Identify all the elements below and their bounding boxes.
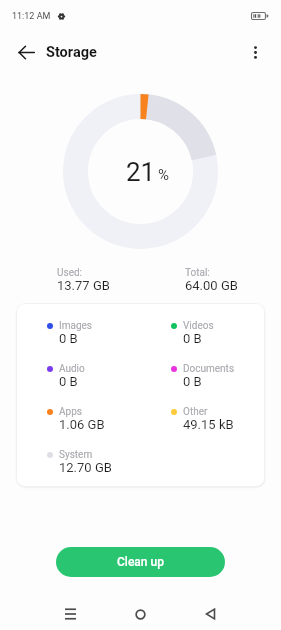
staticText: 11:12 AM [12, 11, 51, 22]
staticText: 13.77 GB [57, 278, 110, 293]
staticText: % [158, 166, 169, 184]
staticText: 0 B [183, 331, 202, 346]
button[interactable]: Recent apps [36, 591, 104, 630]
staticText: 0 B [59, 331, 78, 346]
staticText: Videos [183, 320, 214, 332]
staticText: Documents [183, 363, 235, 375]
button[interactable]: Home [106, 591, 174, 630]
staticText: System [59, 449, 93, 461]
staticText: 21 [126, 157, 156, 187]
staticText: 12.70 GB [59, 460, 112, 475]
staticText: Clean up [117, 555, 164, 569]
staticText: Storage [46, 44, 97, 61]
staticText: Used: [57, 267, 83, 279]
button[interactable]: More options [233, 30, 277, 74]
staticText: Images [59, 320, 93, 332]
staticText: 0 B [183, 374, 202, 389]
button[interactable]: Clean up [56, 547, 225, 577]
staticText: Audio [59, 363, 85, 375]
staticText: 0 B [59, 374, 78, 389]
staticText: Apps [59, 406, 82, 418]
staticText: 64.00 GB [185, 278, 238, 293]
staticText: 1.06 GB [59, 417, 105, 432]
button[interactable]: Back [4, 30, 48, 74]
staticText: 49.15 kB [183, 417, 234, 432]
staticText: Other [183, 406, 208, 418]
staticText: Total: [185, 267, 210, 279]
button[interactable]: Back [176, 591, 244, 630]
